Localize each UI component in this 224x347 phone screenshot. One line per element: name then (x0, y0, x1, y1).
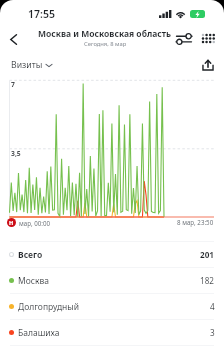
staticText: 3,5 (11, 149, 21, 158)
staticText: 17:55 (28, 7, 55, 21)
staticText: 7 (11, 80, 15, 89)
staticText: Москва и Московская область (38, 28, 172, 40)
staticText: Москва (18, 275, 49, 287)
staticText: Долгопрудный (18, 301, 79, 313)
button[interactable]: Всего (0, 242, 224, 267)
button[interactable]: Долгопрудный (0, 294, 224, 319)
staticText: Балашиха (18, 327, 60, 339)
button[interactable]: Визиты (11, 59, 52, 71)
button[interactable]: Filters (175, 30, 193, 48)
button[interactable]: Apps (199, 30, 217, 48)
staticText: Визиты (11, 59, 43, 71)
staticText: Всего (18, 249, 43, 261)
button[interactable]: Share (198, 55, 218, 75)
staticText: Сегодня, 8 мар (84, 40, 127, 48)
button[interactable]: Москва (0, 268, 224, 293)
staticText: Н (9, 219, 14, 226)
staticText: мар, 00:00 (19, 219, 51, 227)
staticText: 8 мар, 23:50 (177, 218, 214, 226)
staticText: 201 (200, 249, 215, 260)
button[interactable]: Back (1, 27, 25, 51)
button[interactable]: Балашиха (0, 320, 224, 345)
staticText: 182 (200, 275, 215, 286)
staticText: 3 (210, 327, 215, 338)
staticText: 4 (210, 301, 215, 312)
